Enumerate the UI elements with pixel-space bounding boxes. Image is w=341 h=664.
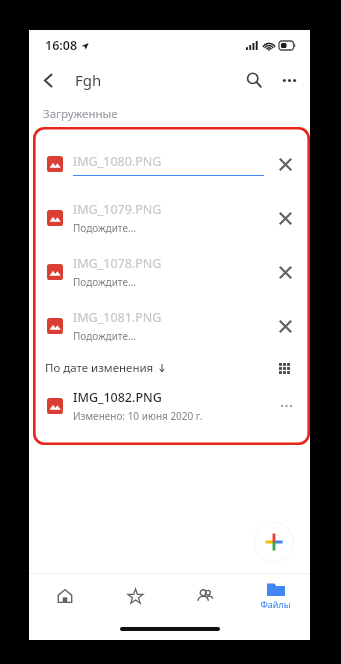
staticText: Fgh (75, 70, 102, 90)
staticText: Подождите... (73, 275, 136, 289)
button[interactable]: Home (29, 574, 100, 618)
button[interactable]: Cancel upload (270, 257, 300, 287)
button[interactable]: По дате изменения (45, 360, 167, 376)
staticText: Изменено: 10 июня 2020 г. (73, 409, 203, 423)
staticText: Файлы (260, 598, 291, 610)
staticText: Подождите... (73, 329, 136, 343)
button[interactable]: IMG_1080.PNG (37, 137, 306, 191)
button[interactable]: Cancel upload (270, 149, 300, 179)
staticText: IMG_1079.PNG (73, 201, 162, 218)
button[interactable]: IMG_1082.PNG (37, 383, 306, 429)
button[interactable]: Starred (100, 574, 170, 618)
staticText: IMG_1080.PNG (73, 153, 162, 170)
button[interactable]: Shared (170, 574, 240, 618)
button[interactable]: Create new (254, 522, 294, 562)
button[interactable]: More options (272, 63, 306, 97)
staticText: 16:08 (45, 37, 78, 54)
staticText: IMG_1078.PNG (73, 255, 162, 272)
staticText: IMG_1082.PNG (73, 389, 162, 406)
button[interactable]: IMG_1078.PNG (37, 245, 306, 299)
button[interactable]: Back (29, 61, 67, 99)
staticText: IMG_1081.PNG (73, 309, 162, 326)
button[interactable]: Cancel upload (270, 203, 300, 233)
button[interactable]: Файлы (240, 574, 310, 618)
button[interactable]: File options (272, 392, 300, 420)
button[interactable]: IMG_1079.PNG (37, 191, 306, 245)
staticText: Подождите... (73, 221, 136, 235)
button[interactable]: Search (236, 62, 272, 98)
button[interactable]: IMG_1081.PNG (37, 299, 306, 353)
button[interactable]: Grid view (272, 356, 296, 380)
button[interactable]: Cancel upload (270, 311, 300, 341)
staticText: По дате изменения (45, 360, 154, 376)
staticText: Загруженные (43, 106, 118, 122)
